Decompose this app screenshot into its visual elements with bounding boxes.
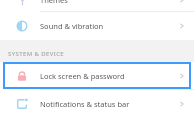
other: Open Lock screen & password <box>178 72 186 80</box>
staticText: Lock screen & password <box>40 71 125 81</box>
other: Open Themes <box>178 0 186 4</box>
button[interactable]: Notifications & status bar <box>0 90 194 118</box>
button[interactable]: Sound & vibration <box>0 12 194 40</box>
button[interactable]: Themes <box>0 0 194 12</box>
other: Open Notifications & status bar <box>178 100 186 108</box>
staticText: SYSTEM & DEVICE <box>8 50 65 58</box>
staticText: Themes <box>40 0 68 5</box>
staticText: Sound & vibration <box>40 21 104 31</box>
button[interactable]: Lock screen & password <box>3 62 191 89</box>
staticText: Notifications & status bar <box>40 99 130 109</box>
other: Open Sound & vibration <box>178 22 186 30</box>
